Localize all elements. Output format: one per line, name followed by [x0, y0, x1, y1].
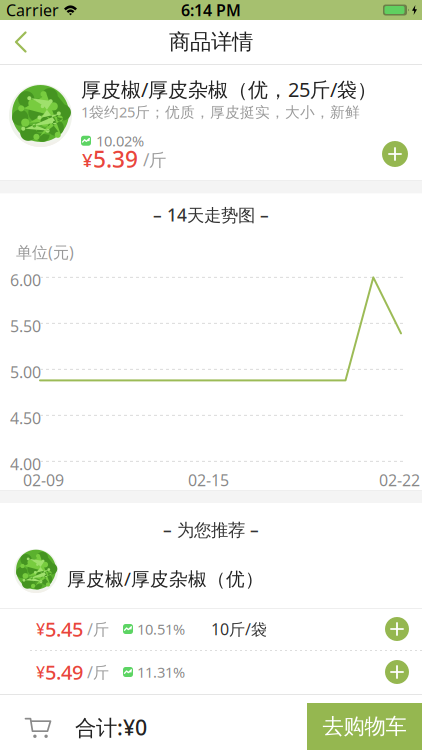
button[interactable]: ¥	[0, 650, 422, 694]
button[interactable]: 加入购物车	[385, 617, 409, 641]
staticText: 5.45	[45, 616, 83, 642]
staticText: 5.50	[10, 315, 41, 337]
staticText: /斤	[83, 618, 109, 640]
staticText: 5.49	[45, 659, 83, 685]
staticText: Carrier	[6, 0, 59, 21]
staticText: 合计:	[75, 713, 123, 741]
staticText: 6:14 PM	[181, 0, 241, 21]
button[interactable]: 加入购物车	[385, 660, 409, 684]
button[interactable]: ¥	[0, 607, 422, 651]
staticText: 02-22	[379, 469, 420, 491]
staticText: 4.00	[10, 453, 41, 475]
staticText: /斤	[138, 148, 166, 171]
staticText: 10斤/袋	[211, 618, 267, 640]
staticText: 厚皮椒/厚皮杂椒（优）	[67, 566, 264, 591]
staticText: 6.00	[10, 269, 41, 291]
staticText: 商品详情	[169, 29, 253, 55]
staticText: ¥0	[123, 713, 147, 741]
staticText: 厚皮椒/厚皮杂椒（优，25斤/袋）	[81, 76, 377, 103]
button[interactable]: 去购物车	[307, 703, 422, 750]
staticText: 4.50	[10, 407, 41, 429]
staticText: 10.51%	[137, 619, 185, 639]
button[interactable]: 合计:	[25, 713, 147, 741]
staticText: – 为您推荐 –	[163, 518, 259, 541]
staticText: 5.39	[93, 144, 138, 174]
staticText: 02-09	[23, 469, 64, 491]
staticText: ¥	[36, 618, 45, 640]
staticText: 5.00	[10, 361, 41, 383]
staticText: 单位(元)	[16, 241, 74, 263]
staticText: 02-15	[188, 469, 229, 491]
staticText: 10.02%	[96, 131, 144, 150]
staticText: – 14天走势图 –	[153, 203, 269, 226]
staticText: 去购物车	[322, 713, 406, 740]
staticText: ¥	[82, 147, 93, 172]
staticText: 1袋约25斤；优质，厚皮挺实，大小，新鲜	[81, 102, 360, 121]
staticText: /斤	[83, 661, 109, 683]
staticText: 11.31%	[137, 662, 185, 682]
button[interactable]: Back	[0, 21, 28, 62]
button[interactable]: 加入购物车	[382, 141, 408, 167]
staticText: ¥	[36, 661, 45, 683]
